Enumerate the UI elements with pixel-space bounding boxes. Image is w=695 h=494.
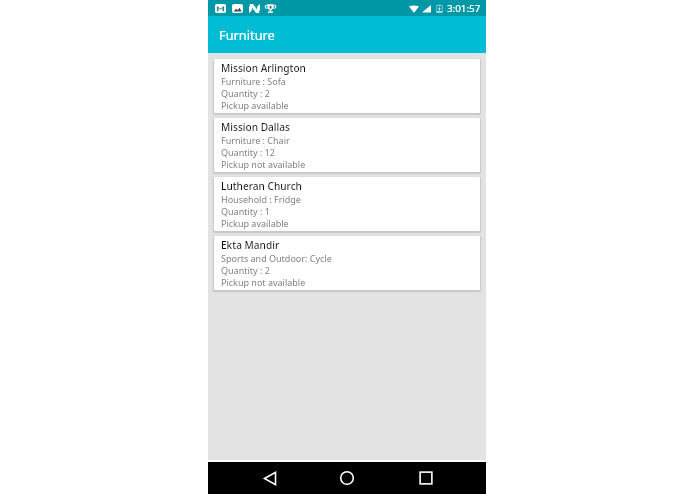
button[interactable]: Lutheran Church [214, 177, 480, 231]
button[interactable]: Back [254, 466, 286, 490]
button[interactable]: Home [331, 466, 363, 490]
staticText: Furniture [219, 26, 275, 43]
staticText: Furniture : Sofa [221, 75, 286, 87]
button[interactable]: Ekta Mandir [214, 236, 480, 290]
staticText: Ekta Mandir [221, 238, 280, 252]
button[interactable]: Mission Dallas [214, 118, 480, 172]
staticText: Pickup available [221, 99, 289, 111]
staticText: Sports and Outdoor: Cycle [221, 252, 332, 264]
staticText: Pickup not available [221, 276, 306, 288]
button[interactable]: Recent apps [410, 466, 442, 490]
staticText: Quantity : 12 [221, 146, 276, 158]
staticText: Quantity : 1 [221, 205, 270, 217]
staticText: Quantity : 2 [221, 87, 270, 99]
button[interactable]: Mission Arlington [214, 59, 480, 113]
staticText: Furniture : Chair [221, 134, 290, 146]
staticText: Household : Fridge [221, 193, 301, 205]
staticText: Quantity : 2 [221, 264, 270, 276]
staticText: 3:01:57 [447, 2, 481, 15]
staticText: Pickup not available [221, 158, 306, 170]
staticText: Pickup available [221, 217, 289, 229]
staticText: Mission Dallas [221, 120, 290, 134]
staticText: Mission Arlington [221, 61, 306, 75]
staticText: Lutheran Church [221, 179, 302, 193]
